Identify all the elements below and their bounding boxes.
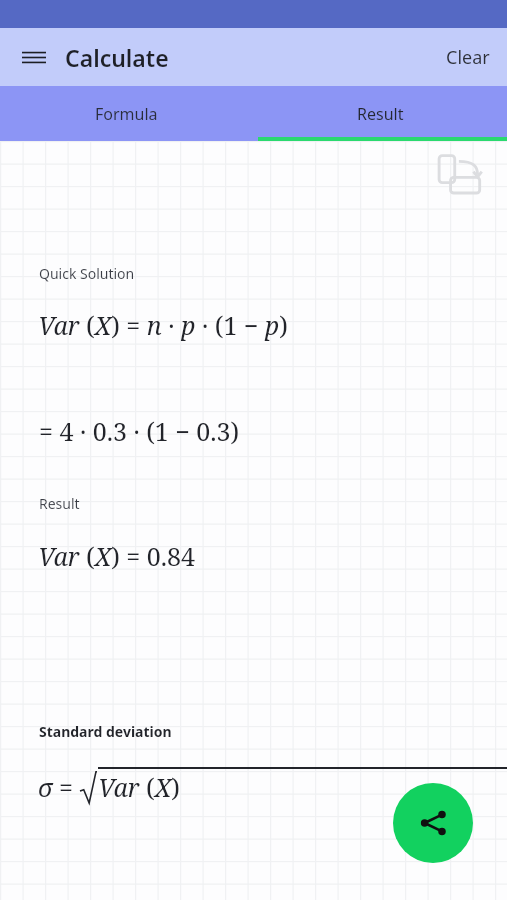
staticText: σ = [38,770,80,804]
button[interactable]: Rotate layout [436,153,488,205]
staticText: Clear [446,45,490,70]
button[interactable]: Share [393,783,473,863]
button[interactable]: Formula [0,86,253,141]
staticText: Formula [95,103,158,125]
staticText: Standard deviation [39,722,172,741]
staticText: Var (X) = 0.84 [38,539,196,573]
staticText: Var (X) = n · p · (1 − p) [38,308,288,342]
staticText: Var (X) [98,770,180,804]
staticText: Quick Solution [39,264,135,283]
staticText: Result [357,103,404,125]
button[interactable]: Clear [429,33,507,82]
staticText: = 4 · 0.3 · (1 − 0.3) [39,414,240,448]
button[interactable]: Result [253,86,507,141]
staticText: Result [39,494,80,513]
staticText: Calculate [65,42,169,73]
button[interactable]: Open navigation menu [12,35,56,79]
